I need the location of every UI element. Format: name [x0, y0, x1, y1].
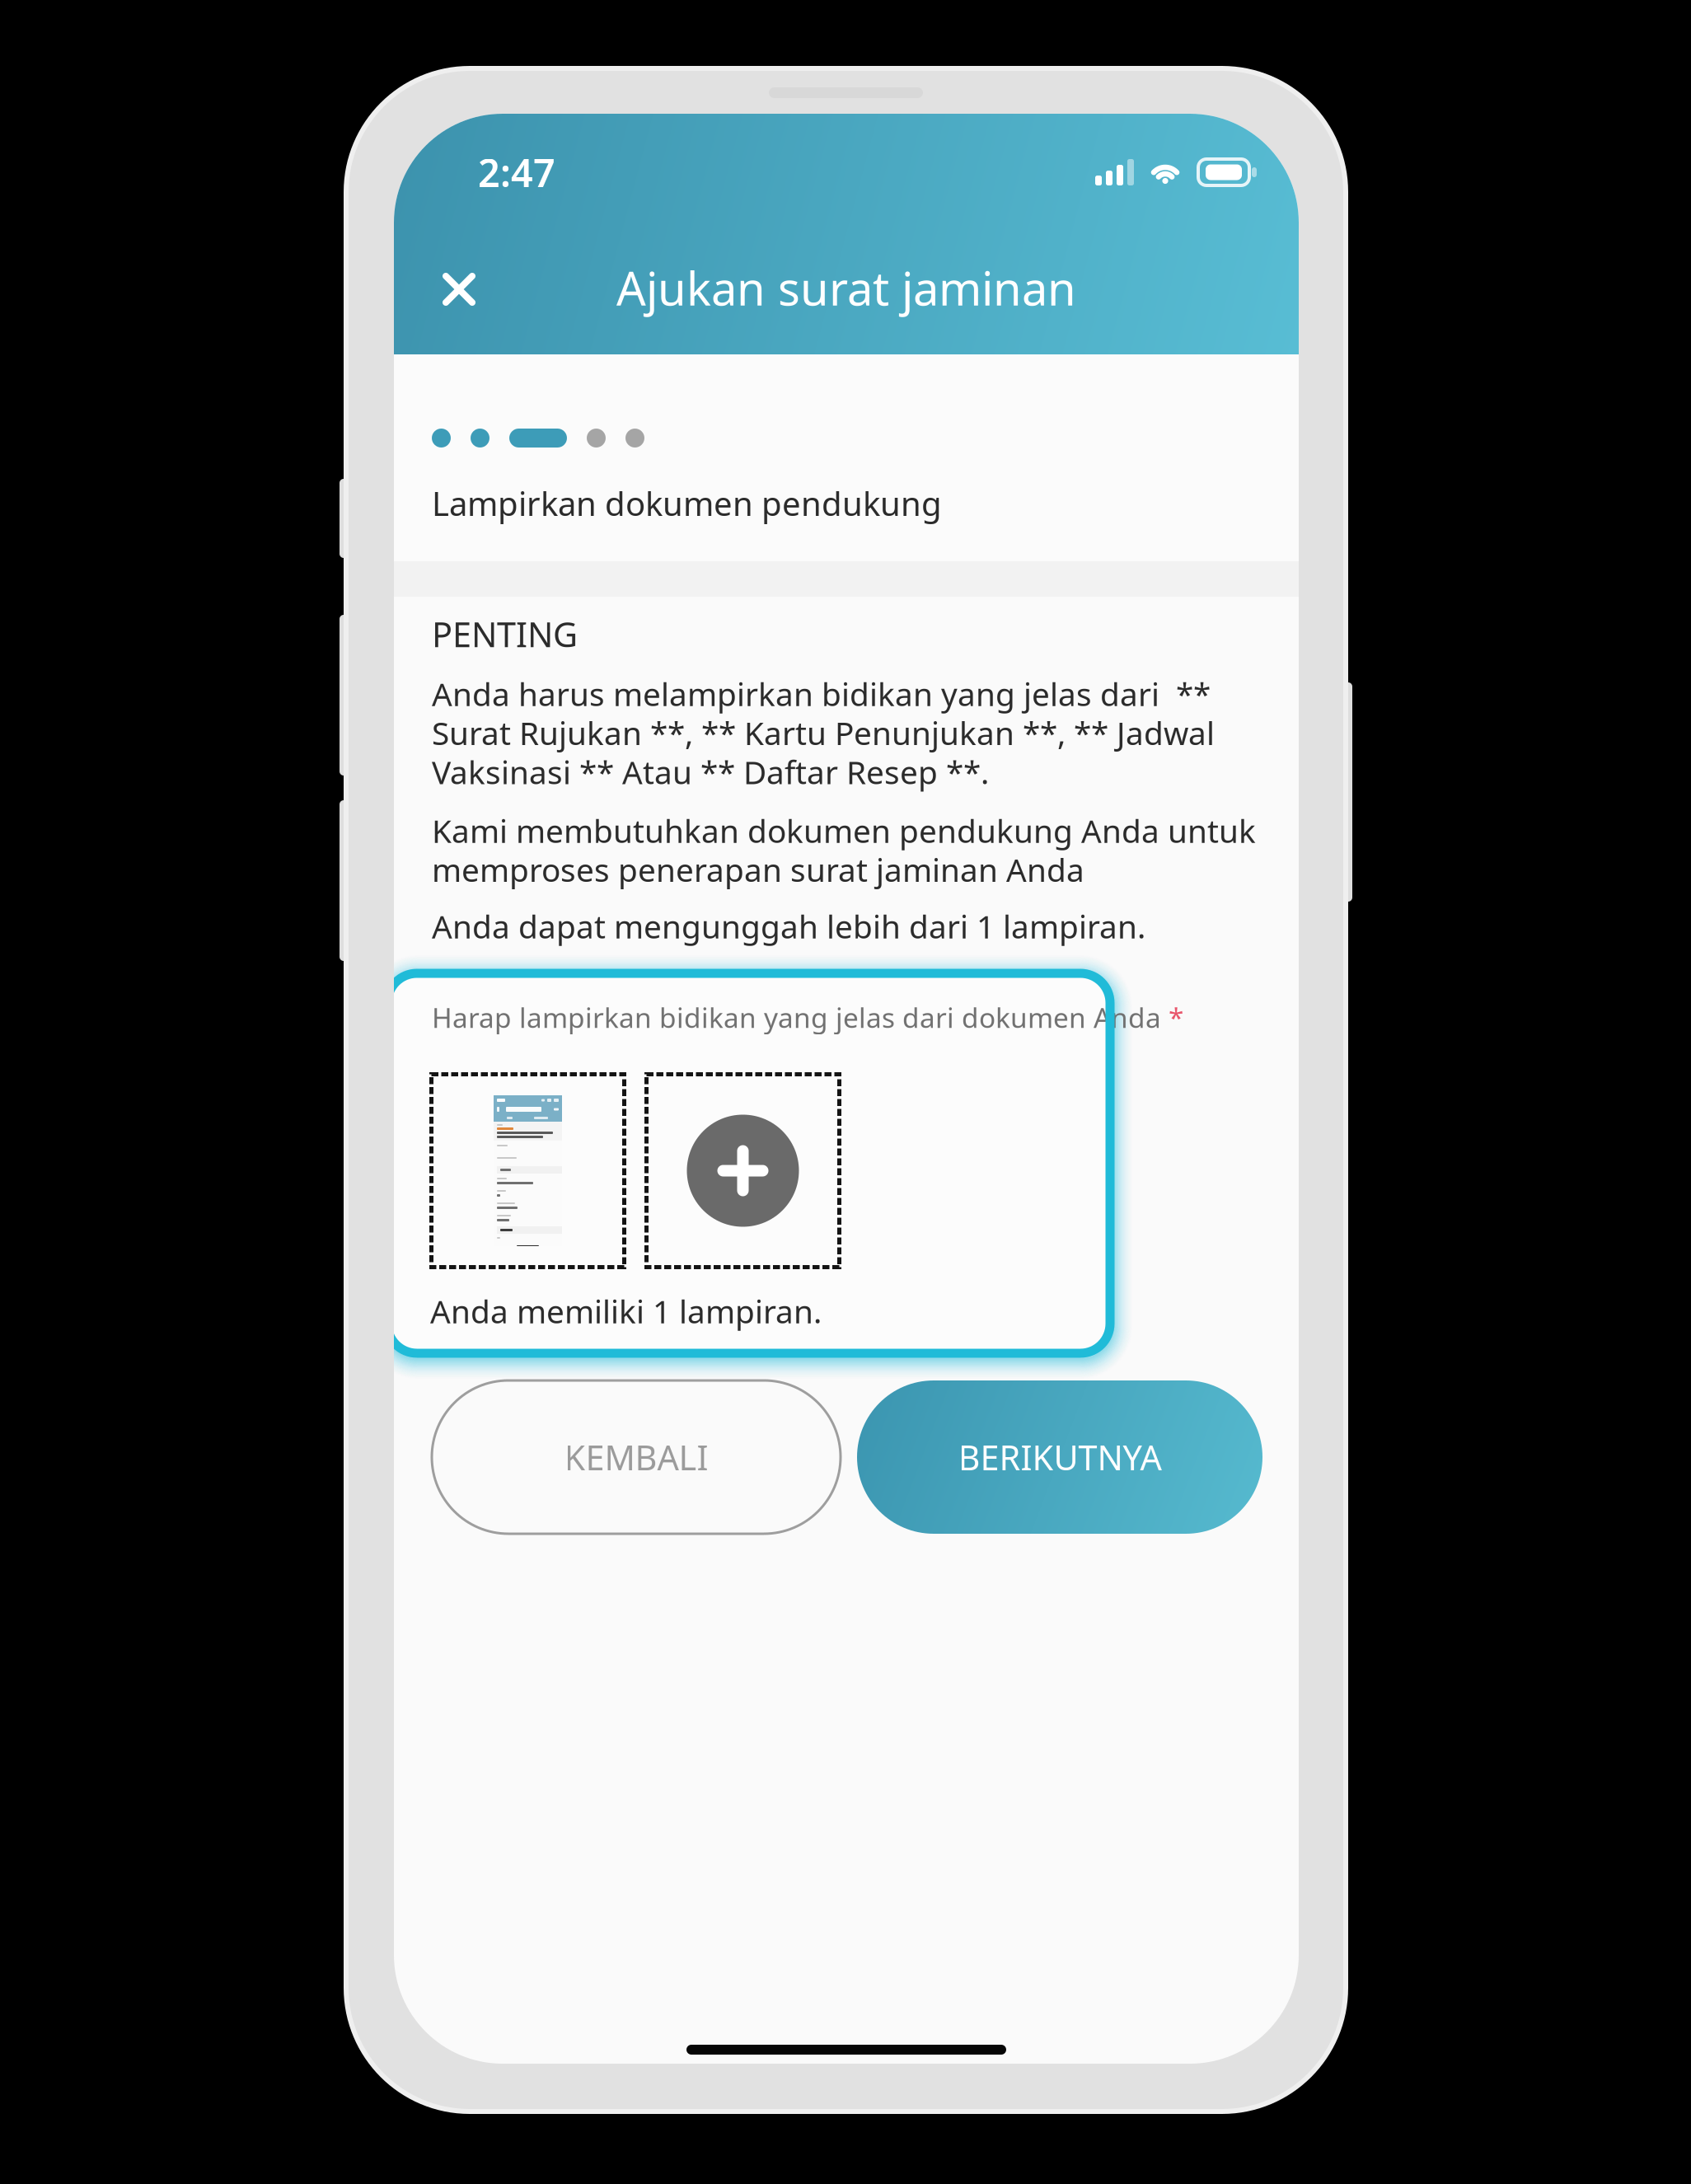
button[interactable]: Attached document — [429, 1072, 626, 1269]
staticText: Kami membutuhkan dokumen pendukung Anda … — [432, 811, 1256, 889]
staticText: * — [1169, 1001, 1183, 1034]
staticText: Harap lampirkan bidikan yang jelas dari … — [432, 1001, 1169, 1034]
button[interactable]: BERIKUTNYA — [857, 1380, 1262, 1534]
staticText: BERIKUTNYA — [958, 1436, 1162, 1478]
staticText: Ajukan surat jaminan — [616, 257, 1076, 318]
button[interactable]: Add attachment — [644, 1072, 841, 1269]
staticText: Lampirkan dokumen pendukung — [432, 483, 942, 523]
button[interactable]: Close — [421, 251, 497, 327]
staticText: 2:47 — [478, 147, 555, 198]
staticText: PENTING — [432, 613, 578, 655]
staticText: KEMBALI — [564, 1436, 708, 1478]
staticText: Anda dapat mengunggah lebih dari 1 lampi… — [432, 907, 1145, 946]
button[interactable]: KEMBALI — [432, 1380, 841, 1534]
staticText: Anda harus melampirkan bidikan yang jela… — [432, 674, 1215, 791]
staticText: Anda memiliki 1 lampiran. — [430, 1291, 822, 1331]
